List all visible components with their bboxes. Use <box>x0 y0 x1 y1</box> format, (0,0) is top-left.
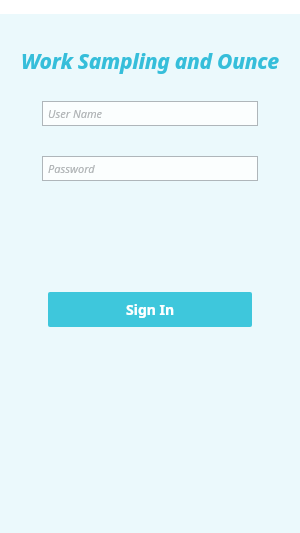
button[interactable]: User Name <box>42 101 258 126</box>
staticText: Password <box>48 161 95 176</box>
staticText: Work Sampling and Ounce <box>0 47 300 76</box>
button[interactable]: Password <box>42 156 258 181</box>
button[interactable]: Sign In <box>48 292 252 327</box>
staticText: User Name <box>48 106 103 121</box>
staticText: Sign In <box>126 300 175 319</box>
